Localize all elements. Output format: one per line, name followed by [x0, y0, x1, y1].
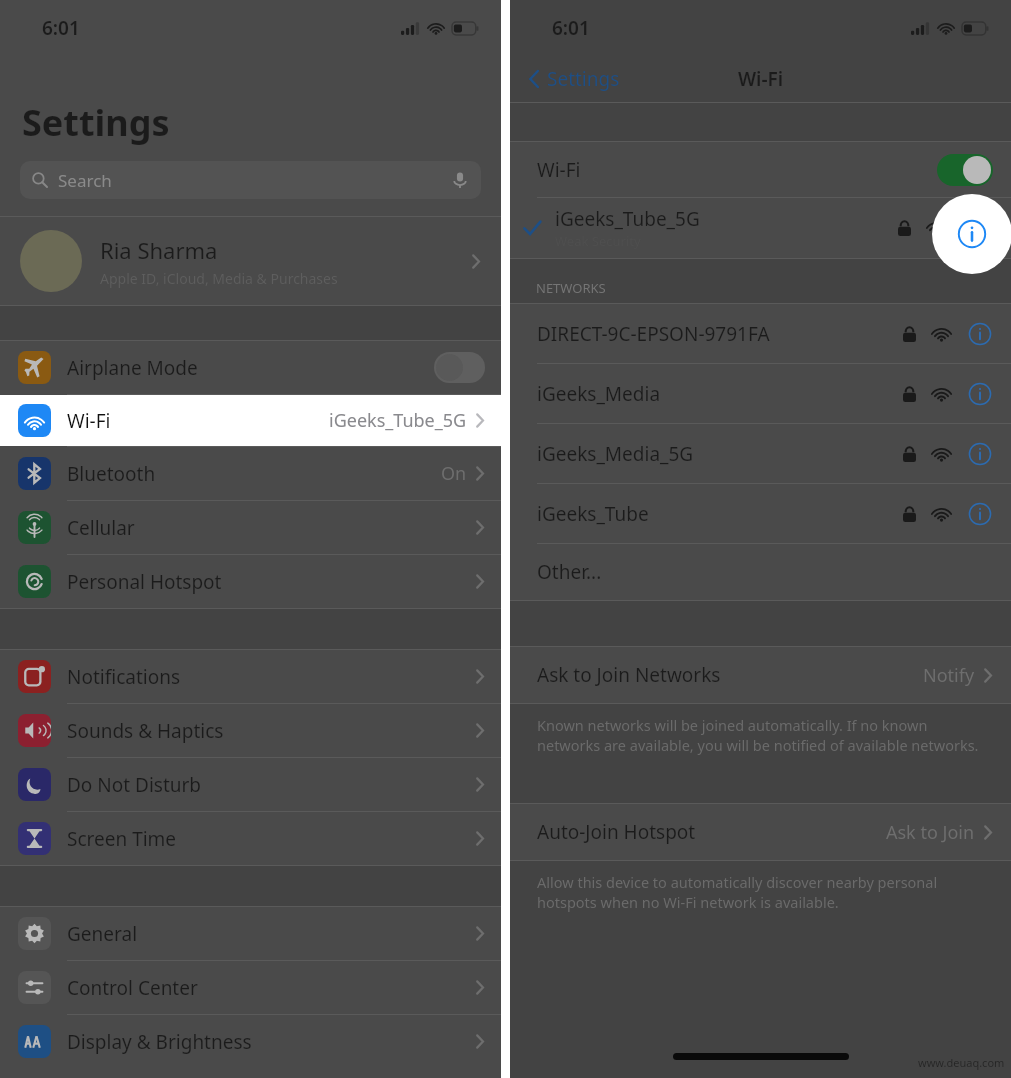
button[interactable]: Info about iGeeks_Tube — [967, 501, 993, 527]
staticText: Settings — [547, 66, 620, 92]
staticText: Known networks will be joined automatica… — [537, 715, 981, 755]
staticText: Search — [58, 169, 112, 192]
button[interactable]: Wi-Fi — [0, 395, 501, 446]
button[interactable]: Wi-Fi — [510, 142, 1011, 197]
button[interactable]: Settings — [528, 66, 620, 92]
staticText: General — [67, 921, 475, 947]
staticText: www.deuaq.com — [918, 1055, 1005, 1070]
staticText: Other... — [537, 559, 602, 585]
staticText: Allow this device to automatically disco… — [537, 872, 981, 912]
button[interactable]: Search — [20, 161, 481, 199]
button[interactable]: Control Center — [0, 961, 501, 1014]
staticText: Bluetooth — [67, 461, 441, 487]
button[interactable]: Notifications — [0, 650, 501, 703]
staticText: iGeeks_Media — [537, 381, 903, 407]
staticText: Ria Sharma — [100, 235, 218, 265]
staticText: Wi-Fi — [67, 408, 329, 434]
button[interactable]: iGeeks_Tube_5G — [510, 198, 1011, 258]
button[interactable]: Wi-Fi toggle — [937, 154, 993, 186]
staticText: Airplane Mode — [67, 355, 434, 381]
staticText: 6:01 — [42, 15, 80, 41]
button[interactable]: iGeeks_Media — [510, 364, 1011, 423]
button[interactable]: Bluetooth — [0, 447, 501, 500]
staticText: iGeeks_Tube_5G — [555, 206, 700, 232]
staticText: Notify — [923, 663, 975, 688]
staticText: Personal Hotspot — [67, 569, 475, 595]
staticText: Cellular — [67, 515, 475, 541]
button[interactable]: General — [0, 907, 501, 960]
button[interactable]: Ask to Join Networks — [510, 647, 1011, 703]
button[interactable]: Airplane Mode toggle — [434, 352, 485, 383]
button[interactable]: Info about iGeeks_Media — [967, 381, 993, 407]
staticText: Ask to Join Networks — [537, 662, 923, 688]
staticText: NETWORKS — [536, 279, 606, 297]
staticText: Sounds & Haptics — [67, 718, 475, 744]
staticText: Auto-Join Hotspot — [537, 819, 886, 845]
staticText: Display & Brightness — [67, 1029, 475, 1055]
staticText: 6:01 — [552, 15, 590, 41]
button[interactable]: iGeeks_Media_5G — [510, 424, 1011, 483]
button[interactable]: Info about iGeeks_Media_5G — [967, 441, 993, 467]
button[interactable]: Screen Time — [0, 812, 501, 865]
button[interactable]: Sounds & Haptics — [0, 704, 501, 757]
button[interactable]: Display & Brightness — [0, 1015, 501, 1068]
button[interactable]: Auto-Join Hotspot — [510, 804, 1011, 860]
staticText: Control Center — [67, 975, 475, 1001]
staticText: Screen Time — [67, 826, 475, 852]
button[interactable]: Other... — [510, 544, 1011, 600]
button[interactable]: Network info — [932, 194, 1011, 274]
button[interactable]: Do Not Disturb — [0, 758, 501, 811]
staticText: On — [441, 461, 467, 486]
staticText: DIRECT-9C-EPSON-9791FA — [537, 321, 903, 347]
staticText: iGeeks_Tube_5G — [329, 408, 467, 433]
staticText: Settings — [22, 98, 170, 147]
staticText: Notifications — [67, 664, 475, 690]
staticText: iGeeks_Tube — [537, 501, 903, 527]
staticText: Apple ID, iCloud, Media & Purchases — [100, 269, 338, 288]
button[interactable]: iGeeks_Tube — [510, 484, 1011, 543]
button[interactable]: Ria Sharma — [0, 217, 501, 305]
staticText: Wi-Fi — [738, 66, 784, 92]
staticText: Wi-Fi — [537, 157, 937, 183]
staticText: Do Not Disturb — [67, 772, 475, 798]
button[interactable]: Cellular — [0, 501, 501, 554]
staticText: Ask to Join — [886, 820, 975, 845]
button[interactable]: Airplane Mode — [0, 341, 501, 394]
staticText: iGeeks_Media_5G — [537, 441, 903, 467]
button[interactable]: DIRECT-9C-EPSON-9791FA — [510, 304, 1011, 363]
button[interactable]: Info about DIRECT-9C-EPSON-9791FA — [967, 321, 993, 347]
button[interactable]: Personal Hotspot — [0, 555, 501, 608]
